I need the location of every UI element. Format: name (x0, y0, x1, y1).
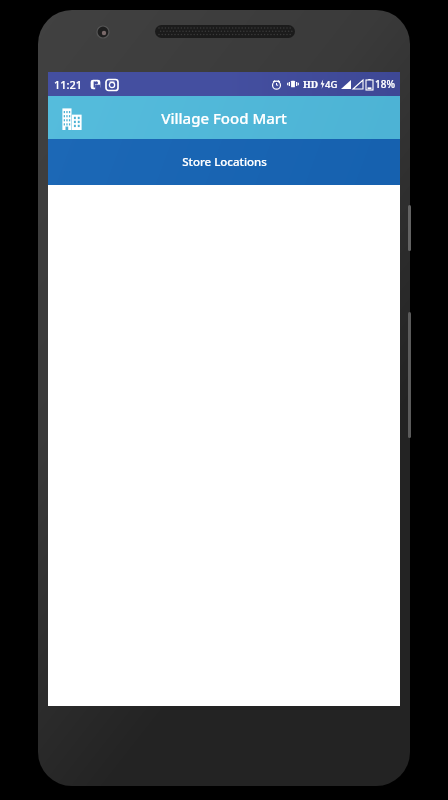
staticText: Store Locations (182, 154, 267, 170)
staticText: 18% (375, 77, 395, 91)
button[interactable]: Store Locations (48, 139, 400, 185)
staticText: HD (303, 78, 319, 91)
staticText: Village Food Mart (161, 108, 287, 128)
staticText: 11:21 (54, 77, 83, 92)
button[interactable]: Stores (52, 98, 92, 138)
staticText: 4G (325, 78, 338, 91)
